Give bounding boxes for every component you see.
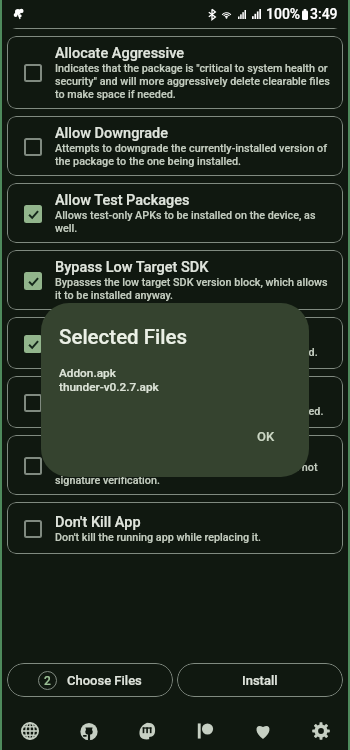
staticText: Attempts to downgrade the currently-inst… [55, 142, 336, 168]
staticText: Allocate Aggressive [55, 45, 185, 62]
button[interactable]: Allow Test Packages [7, 183, 343, 243]
button[interactable]: Website [0, 712, 59, 750]
staticText: Don't check whether the installed APEX c… [55, 405, 324, 418]
staticText: Allows test-only APKs to be installed on… [55, 209, 336, 235]
button[interactable]: Allow Old SDK [7, 317, 343, 369]
staticText: Indicates that the package is "critical … [55, 62, 336, 101]
staticText: Allow Test Packages [55, 192, 190, 209]
staticText: 100% [266, 6, 301, 22]
staticText: Don't Kill App [55, 514, 141, 531]
button[interactable]: OK [245, 423, 287, 450]
staticText: Choose Files [67, 673, 142, 688]
staticText: OK [257, 429, 275, 444]
staticText: 3:49 [310, 6, 338, 22]
staticText: Addon.apk thunder-v0.2.7.apk [59, 366, 159, 394]
staticText: 2 [44, 674, 51, 688]
staticText: Disable Allowed APEX Update Check [55, 388, 293, 405]
button[interactable]: GitHub [59, 712, 118, 750]
button[interactable]: Disable Verification [7, 435, 343, 495]
staticText: Bypass Low Target SDK [55, 259, 209, 276]
staticText: Selected Files [59, 325, 188, 349]
staticText: Bypasses the low target SDK version bloc… [55, 276, 336, 302]
staticText: Don't kill the running app while replaci… [55, 531, 262, 544]
button[interactable]: Disable Allowed APEX Update Check [7, 376, 343, 428]
button[interactable]: Bypass Low Target SDK [7, 250, 343, 310]
button[interactable]: Install [177, 663, 343, 697]
staticText: Allow Downgrade [55, 125, 168, 142]
button[interactable]: All Users [7, 28, 343, 29]
button[interactable]: Don't Kill App [7, 502, 343, 554]
button[interactable]: Patreon [176, 712, 234, 750]
button[interactable]: Allow Downgrade [7, 116, 343, 176]
staticText: Disables package verification during ins… [55, 461, 336, 487]
button[interactable]: 2 [7, 663, 173, 697]
button[interactable]: Mastodon [118, 712, 176, 750]
staticText: Install [242, 673, 278, 688]
button[interactable]: Donate [234, 712, 292, 750]
staticText: Allow Old SDK [55, 329, 148, 346]
button[interactable]: Allocate Aggressive [7, 36, 343, 109]
staticText: Allows apps targeting old SDK versions t… [55, 346, 318, 359]
button[interactable]: Settings [292, 712, 350, 750]
